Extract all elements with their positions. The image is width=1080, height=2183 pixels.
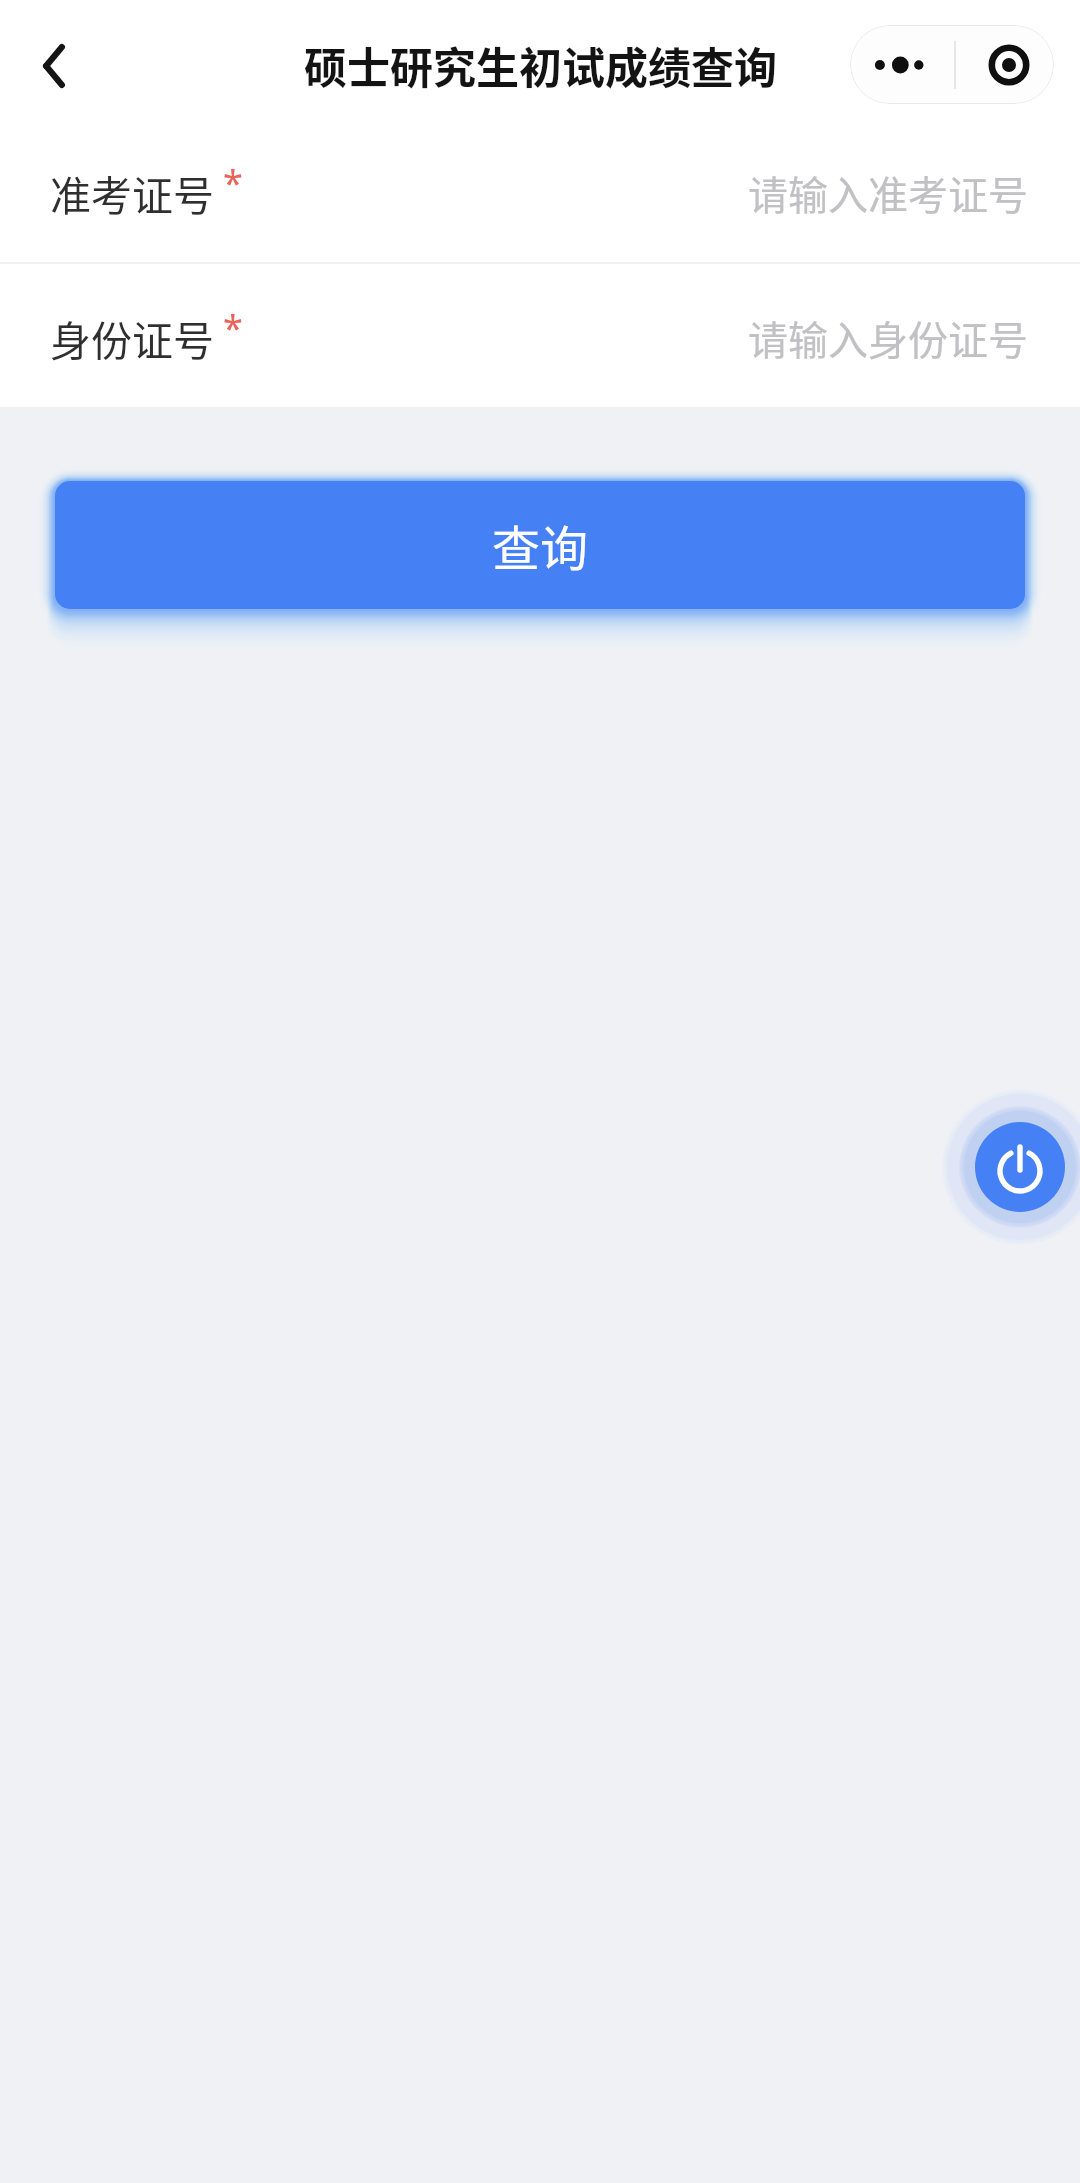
staticText: 准考证号 (50, 163, 214, 222)
staticText: 查询 (492, 510, 589, 580)
staticText: 身份证号 (50, 308, 214, 367)
button[interactable]: Close mini program (956, 25, 1054, 104)
button[interactable]: Power (935, 1082, 1080, 1252)
staticText: 硕士研究生初试成绩查询 (304, 34, 777, 96)
button[interactable]: 查询 (55, 481, 1025, 609)
staticText: 请输入准考证号 (748, 164, 1028, 222)
staticText: * (223, 303, 243, 352)
button[interactable]: 准考证号 (0, 131, 1080, 262)
staticText: 请输入身份证号 (748, 309, 1028, 367)
button[interactable]: More options (850, 25, 954, 104)
button[interactable]: 身份证号 (0, 264, 1080, 407)
staticText: * (223, 158, 243, 207)
button[interactable]: Back (19, 31, 89, 101)
